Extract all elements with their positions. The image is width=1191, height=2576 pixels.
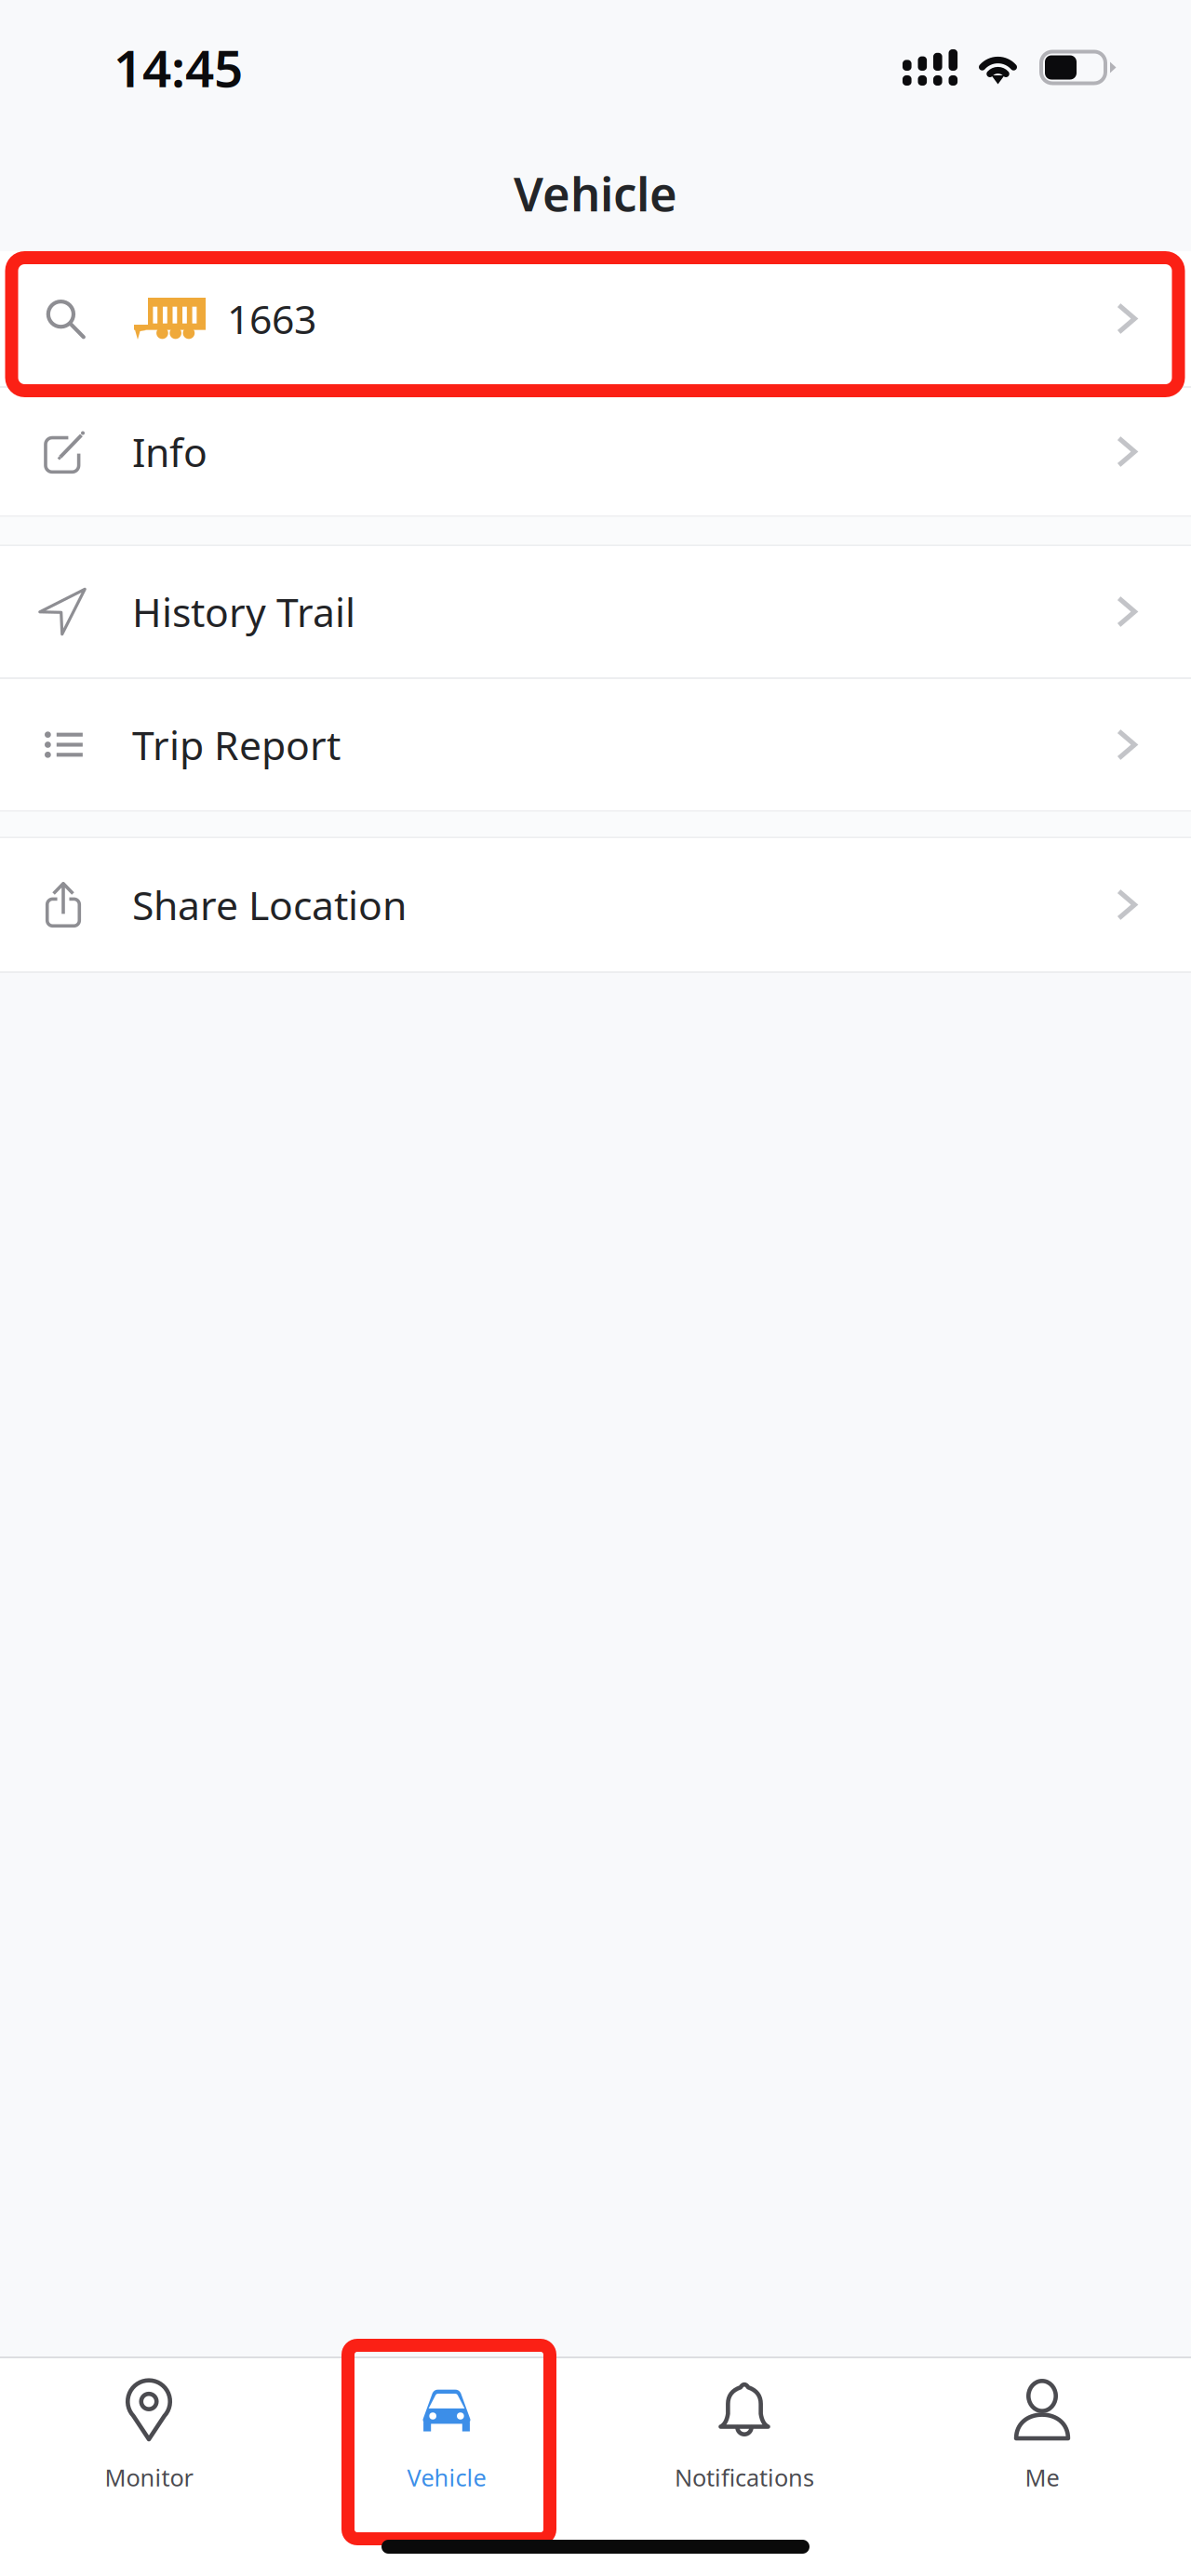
staticText: Notifications [675, 2462, 814, 2493]
button[interactable]: Trip Report [0, 679, 1191, 810]
button[interactable]: History Trail [0, 546, 1191, 677]
staticText: Me [1025, 2462, 1059, 2493]
staticText: Trip Report [132, 718, 341, 771]
staticText: 14:45 [114, 34, 243, 101]
button[interactable]: 1663 [0, 251, 1191, 386]
staticText: History Trail [132, 585, 355, 638]
button[interactable]: Info [0, 388, 1191, 515]
staticText: Share Location [132, 878, 407, 931]
staticText: Vehicle [514, 162, 677, 224]
staticText: Monitor [105, 2462, 193, 2493]
staticText: Vehicle [407, 2462, 486, 2493]
button[interactable]: Share Location [0, 838, 1191, 971]
staticText: 1663 [227, 292, 316, 345]
button[interactable]: Notifications [595, 2358, 893, 2576]
button[interactable]: Monitor [0, 2358, 298, 2576]
button[interactable]: Vehicle [298, 2358, 595, 2576]
staticText: Info [132, 425, 207, 478]
button[interactable]: Me [893, 2358, 1191, 2576]
